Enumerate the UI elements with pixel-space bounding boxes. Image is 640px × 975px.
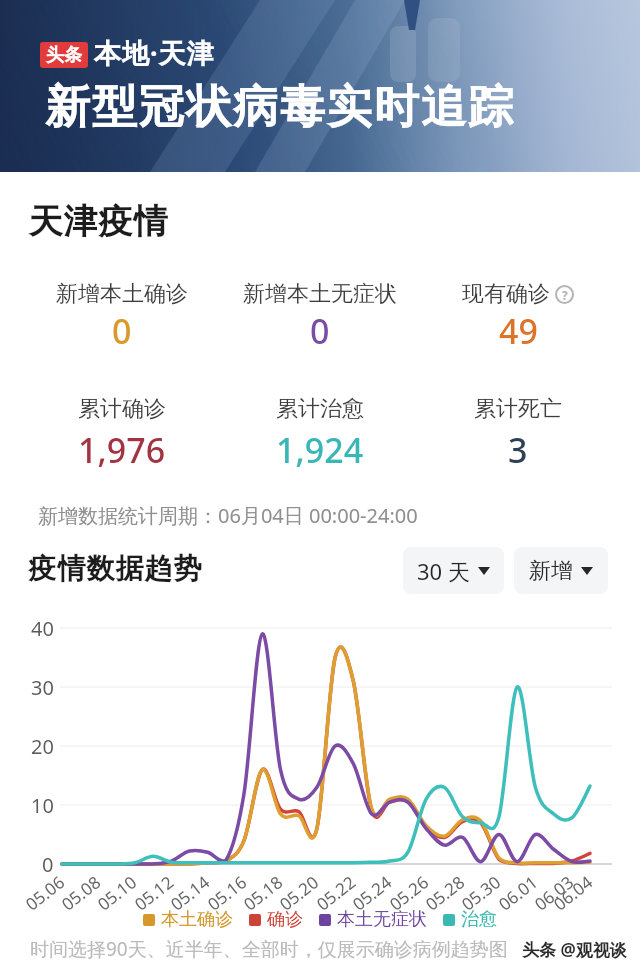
staticText: 时间选择90天、近半年、全部时，仅展示确诊病例趋势图 [30,936,508,962]
staticText: 05.16 [203,870,251,915]
staticText: 0 [42,851,54,877]
staticText: 本土确诊 [161,908,233,931]
staticText: 0 [112,308,132,354]
button[interactable]: 头条 [40,42,88,68]
button[interactable]: 本土确诊 [143,908,233,931]
staticText: 49 [499,308,538,354]
staticText: 10 [31,792,54,818]
staticText: 0 [310,308,330,354]
staticText: 05.18 [239,870,287,915]
staticText: 天津疫情 [28,200,168,243]
staticText: 头条 [46,44,82,67]
staticText: 疫情数据趋势 [28,551,202,586]
staticText: 新增 [529,557,573,585]
staticText: 05.30 [457,870,505,915]
button[interactable]: 治愈 [443,908,497,931]
button[interactable]: 30 天 [403,547,504,594]
staticText: ? [562,287,568,303]
staticText: 本土无症状 [337,908,427,931]
staticText: 头条 @观视谈 [522,938,627,961]
staticText: 3 [508,427,528,473]
button[interactable]: 本土无症状 [319,908,427,931]
button[interactable]: ? [555,285,574,304]
staticText: 累计死亡 [474,395,562,423]
staticText: 30 [31,674,54,700]
staticText: 本地·天津 [94,34,215,71]
staticText: 05.28 [421,870,469,915]
staticText: 30 天 [417,556,470,586]
staticText: 05.12 [130,870,178,915]
staticText: 累计治愈 [276,395,364,423]
staticText: 40 [31,615,54,641]
staticText: 新增本土无症状 [243,280,397,308]
staticText: 现有确诊 [462,280,550,308]
staticText: 20 [31,733,54,759]
staticText: 05.10 [93,870,141,915]
staticText: 新增本土确诊 [56,280,188,308]
staticText: 新增数据统计周期：06月04日 00:00-24:00 [38,502,418,529]
staticText: 1,924 [276,427,364,473]
staticText: 累计确诊 [78,395,166,423]
staticText: 05.22 [312,870,360,915]
button[interactable]: 确诊 [249,908,303,931]
staticText: 治愈 [461,908,497,931]
staticText: 05.24 [348,870,396,915]
staticText: 确诊 [267,908,303,931]
button[interactable]: 新增 [514,547,608,594]
staticText: 06.04 [549,870,597,915]
staticText: 新型冠状病毒实时追踪 [44,79,514,136]
staticText: 06.01 [494,870,542,915]
staticText: 05.14 [166,870,214,915]
staticText: 05.06 [21,870,69,915]
staticText: 1,976 [78,427,166,473]
staticText: 05.08 [57,870,105,915]
staticText: 05.20 [275,870,323,915]
staticText: 06.03 [530,870,578,915]
staticText: 05.26 [385,870,433,915]
